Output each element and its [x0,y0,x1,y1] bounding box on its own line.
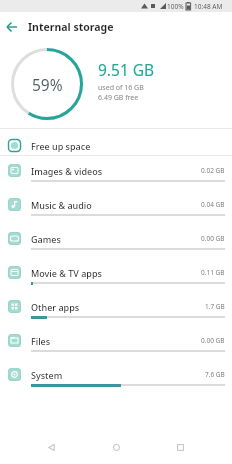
button[interactable]: Music & audio [0,192,232,226]
button[interactable] [38,437,65,458]
staticText: 0.00 GB [201,234,225,243]
staticText: 59% [32,74,63,95]
button[interactable] [167,437,194,458]
staticText: 0.11 GB [201,268,225,277]
staticText: 10:48 AM [194,2,223,11]
staticText: 0.04 GB [201,200,225,209]
staticText: 100% [167,2,184,11]
button[interactable]: Other apps [0,294,232,328]
staticText: 9.51 GB [98,59,155,80]
button[interactable]: System [0,362,232,396]
staticText: Movie & TV apps [31,267,102,279]
staticText: 7.6 GB [205,370,225,379]
button[interactable] [103,437,130,458]
staticText: System [31,369,63,381]
button[interactable] [2,17,22,37]
staticText: Images & videos [31,165,103,177]
staticText: used of 16 GB [98,83,144,93]
staticText: Free up space [31,140,91,152]
button[interactable]: Movie & TV apps [0,260,232,294]
staticText: 0.00 GB [201,336,225,345]
staticText: Games [31,233,61,245]
button[interactable]: Free up space [0,136,232,155]
staticText: Internal storage [28,20,114,34]
button[interactable]: Images & videos [0,158,232,192]
button[interactable]: Games [0,226,232,260]
staticText: Music & audio [31,199,92,211]
staticText: 0.02 GB [201,166,225,175]
staticText: 1.7 GB [205,302,225,311]
staticText: 6.49 GB free [98,93,139,103]
staticText: Files [31,335,51,347]
staticText: Other apps [31,301,80,313]
button[interactable]: Files [0,328,232,362]
